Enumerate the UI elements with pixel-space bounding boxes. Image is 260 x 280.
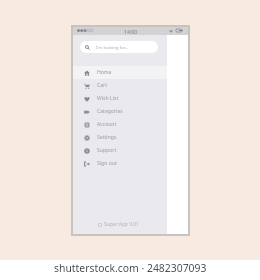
staticText: I'm looking for...	[96, 44, 129, 50]
staticText: Super App V.01	[104, 221, 139, 228]
staticText: Cart	[97, 82, 108, 89]
staticText: shutterstock.com · 2482307093	[54, 261, 207, 274]
button[interactable]: Wish List	[73, 92, 167, 105]
button[interactable]: I'm looking for...	[80, 41, 158, 53]
staticText: Support	[97, 147, 117, 154]
button[interactable]: Categories	[73, 105, 167, 118]
staticText: Wish List	[97, 95, 119, 102]
button[interactable]: Settings	[73, 131, 167, 144]
staticText: Home	[97, 69, 112, 76]
button[interactable]: Cart	[73, 79, 167, 92]
staticText: Settings	[97, 134, 117, 141]
button[interactable]: Account	[73, 118, 167, 131]
staticText: 14:00	[124, 28, 138, 35]
button[interactable]: Sign out	[73, 157, 167, 170]
staticText: Sign out	[97, 160, 117, 167]
button[interactable]: Support	[73, 144, 167, 157]
staticText: Account	[97, 121, 117, 128]
staticText: Categories	[97, 108, 123, 115]
button[interactable]: Home	[73, 66, 167, 79]
